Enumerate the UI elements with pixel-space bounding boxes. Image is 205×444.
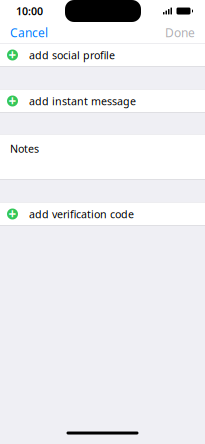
staticText: 10:00 xyxy=(16,4,43,18)
button[interactable]: + xyxy=(0,202,205,225)
staticText: add social profile xyxy=(29,48,115,62)
staticText: Notes xyxy=(10,141,39,156)
button[interactable]: + xyxy=(0,89,205,112)
staticText: + xyxy=(8,205,16,223)
staticText: add instant message xyxy=(29,94,136,108)
staticText: Cancel xyxy=(10,24,48,40)
staticText: add verification code xyxy=(29,207,134,221)
button[interactable]: Cancel xyxy=(0,19,48,45)
staticText: + xyxy=(8,92,16,110)
staticText: + xyxy=(8,46,16,64)
staticText: Done xyxy=(165,24,195,40)
button[interactable]: + xyxy=(0,43,205,66)
button[interactable]: Done xyxy=(165,19,205,45)
